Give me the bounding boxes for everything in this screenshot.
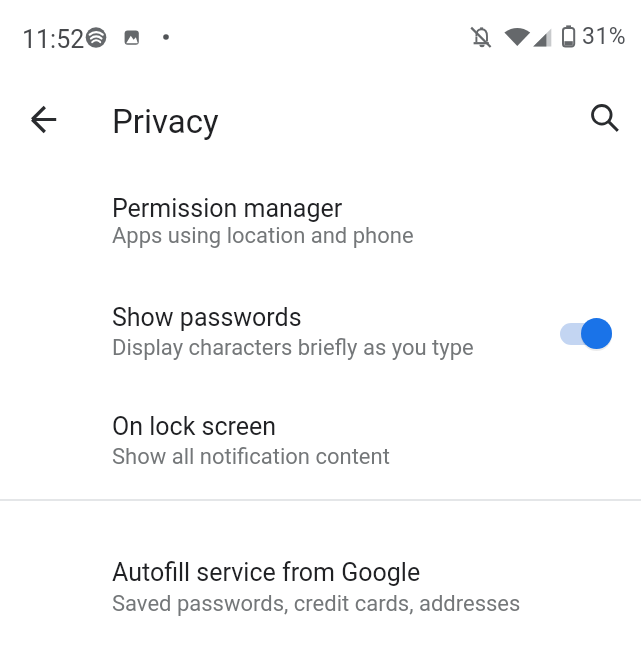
button[interactable] bbox=[19, 95, 67, 143]
button[interactable]: Permission manager bbox=[0, 166, 641, 274]
button[interactable]: Autofill service from Google bbox=[0, 528, 641, 638]
staticText: Autofill service from Google bbox=[112, 558, 421, 587]
staticText: Permission manager bbox=[112, 194, 343, 223]
staticText: On lock screen bbox=[112, 412, 277, 441]
staticText: Display characters briefly as you type bbox=[112, 335, 474, 361]
staticText: Saved passwords, credit cards, addresses bbox=[112, 591, 521, 617]
button[interactable]: Show passwords bbox=[0, 274, 641, 382]
staticText: Show passwords bbox=[112, 303, 302, 332]
staticText: Privacy bbox=[112, 102, 219, 141]
staticText: Apps using location and phone bbox=[112, 223, 414, 249]
staticText: 31% bbox=[582, 23, 627, 50]
staticText: 11:52 bbox=[22, 25, 85, 54]
button[interactable] bbox=[577, 90, 625, 138]
button[interactable]: On lock screen bbox=[0, 383, 641, 491]
staticText: Show all notification content bbox=[112, 444, 390, 470]
